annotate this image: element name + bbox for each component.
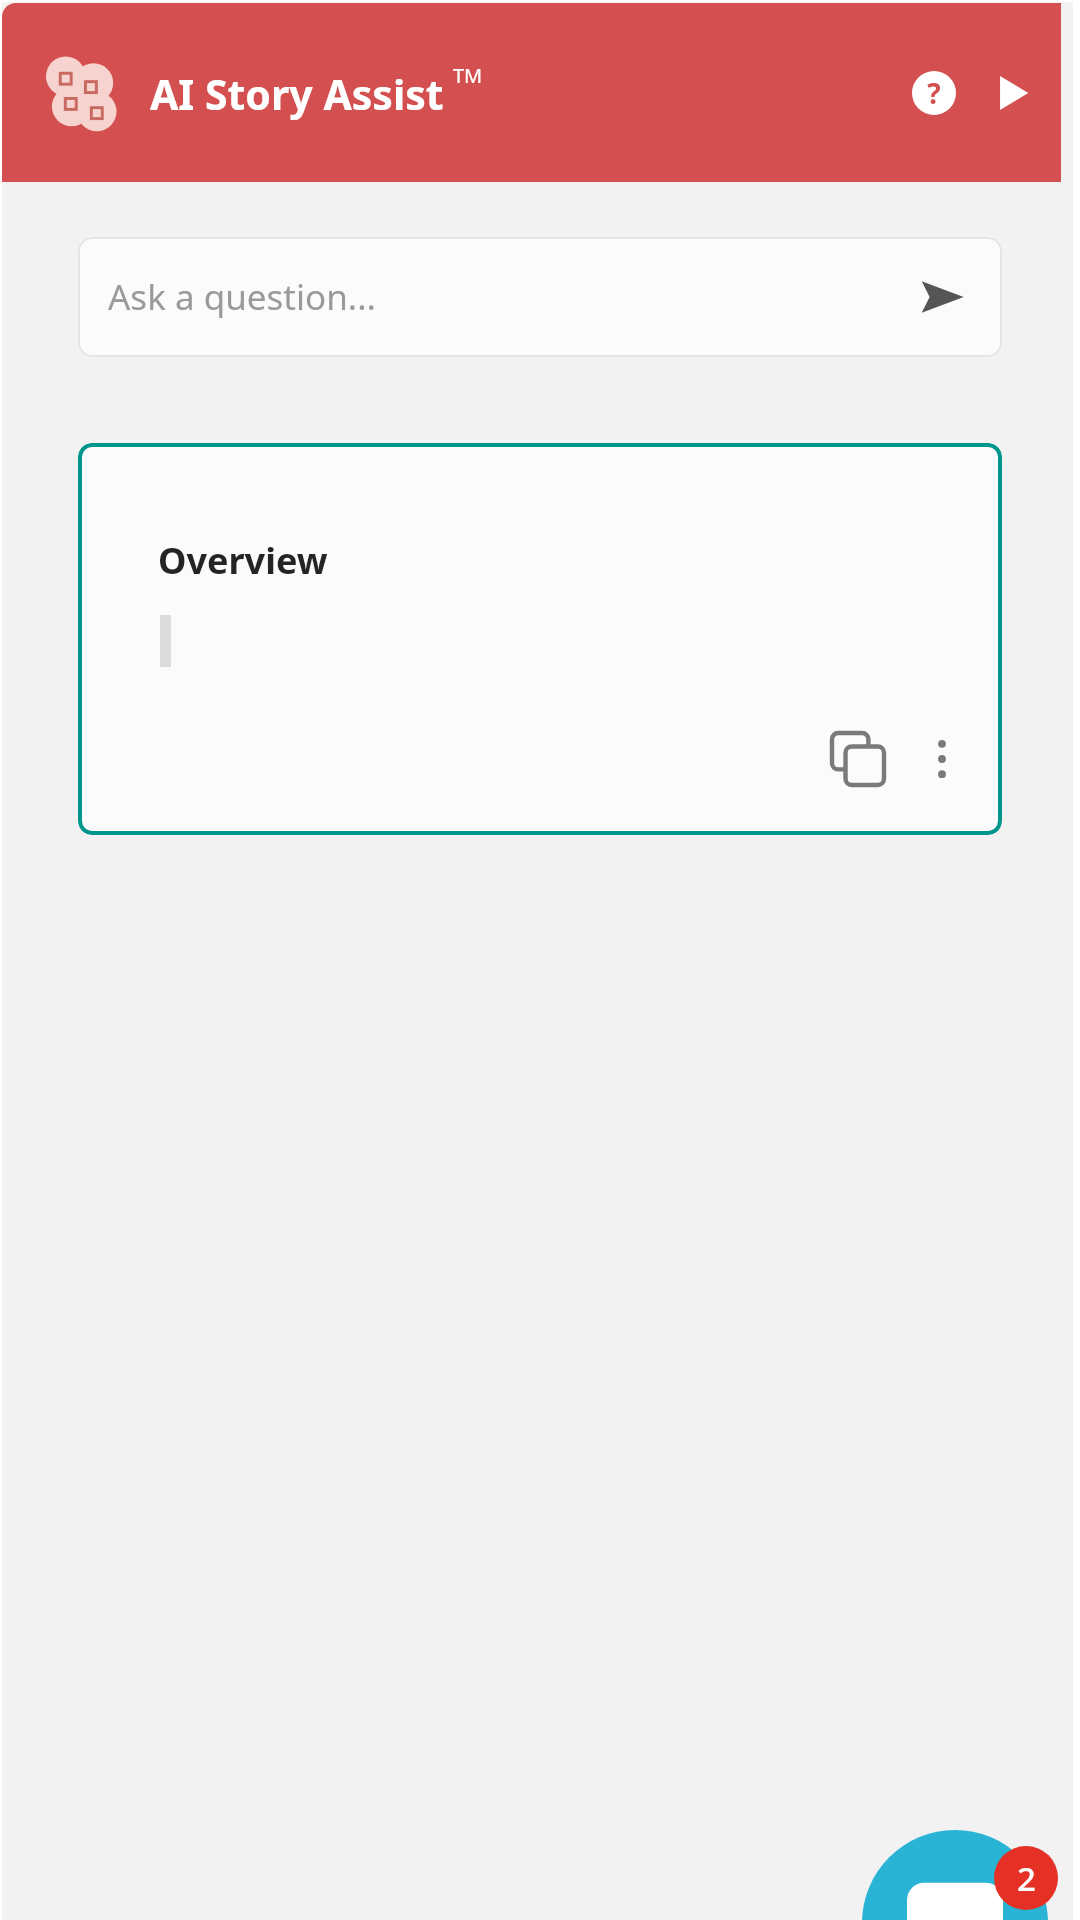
- staticText: Overview: [158, 536, 328, 585]
- button[interactable]: Play: [980, 60, 1046, 126]
- button[interactable]: Send: [912, 267, 972, 327]
- button[interactable]: More options: [902, 719, 982, 799]
- staticText: ?: [927, 74, 941, 112]
- button[interactable]: Ask a question...: [78, 237, 1002, 357]
- button[interactable]: Help: [900, 59, 968, 127]
- button[interactable]: Copy: [814, 715, 902, 803]
- button[interactable]: Chat: [862, 1830, 1048, 1920]
- staticText: Ask a question...: [108, 273, 912, 321]
- staticText: 2: [1017, 1856, 1036, 1901]
- staticText: TM: [453, 62, 483, 89]
- staticText: AI Story Assist: [150, 66, 444, 122]
- button[interactable]: Overview: [78, 443, 1002, 835]
